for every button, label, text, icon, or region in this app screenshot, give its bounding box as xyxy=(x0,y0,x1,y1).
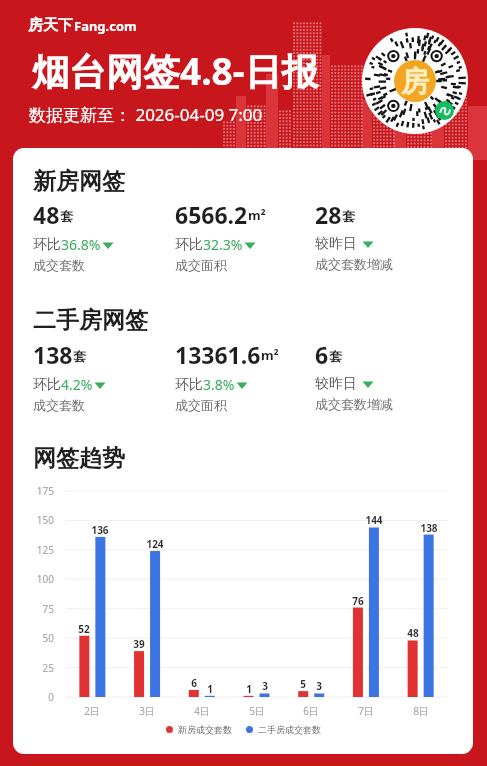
staticText: 二手房成交套数 xyxy=(258,724,321,735)
staticText: 3.8% xyxy=(203,375,235,394)
button[interactable]: 二手房成交套数 xyxy=(246,724,321,735)
staticText: 环比 xyxy=(175,236,203,254)
staticText: 150 xyxy=(13,513,54,527)
staticText: 124 xyxy=(135,537,175,551)
staticText: 136 xyxy=(80,523,120,537)
staticText: 成交面积 xyxy=(175,257,227,273)
staticText: 较昨日 xyxy=(315,235,357,253)
staticText: 28 xyxy=(315,199,342,230)
staticText: 144 xyxy=(354,513,394,527)
staticText: 25 xyxy=(13,661,54,675)
staticText: 6566.2 xyxy=(175,199,248,230)
staticText: m² xyxy=(261,346,279,364)
staticText: 3日 xyxy=(127,704,167,718)
staticText: 100 xyxy=(13,572,54,586)
staticText: m² xyxy=(248,206,266,224)
staticText: 环比 xyxy=(175,376,203,394)
staticText: 4.2% xyxy=(61,375,93,394)
staticText: 6日 xyxy=(291,704,331,718)
staticText: 套 xyxy=(60,208,73,224)
staticText: 0 xyxy=(13,690,54,704)
staticText: 二手房网签 xyxy=(33,306,148,335)
button[interactable]: 扫描二维码 xyxy=(362,28,468,134)
staticText: 8日 xyxy=(401,704,441,718)
staticText: 套 xyxy=(329,348,342,364)
staticText: 成交面积 xyxy=(175,397,227,413)
staticText: 5 xyxy=(283,677,323,691)
staticText: 成交套数 xyxy=(33,397,85,413)
staticText: 环比 xyxy=(33,376,61,394)
staticText: 3 xyxy=(299,679,339,693)
staticText: 网签趋势 xyxy=(33,444,125,473)
staticText: 48 xyxy=(33,199,60,230)
staticText: 较昨日 xyxy=(315,375,357,393)
button[interactable]: 新房成交套数 xyxy=(166,724,232,735)
staticText: 房 xyxy=(401,64,429,99)
staticText: 125 xyxy=(13,543,54,557)
staticText: 新房成交套数 xyxy=(178,724,232,735)
staticText: 烟台网签4.8-日报 xyxy=(32,45,319,96)
staticText: 2日 xyxy=(72,704,112,718)
staticText: 13361.6 xyxy=(175,339,261,370)
staticText: 4日 xyxy=(182,704,222,718)
staticText: 房天下 xyxy=(28,16,73,35)
staticText: 52 xyxy=(64,622,104,636)
staticText: 50 xyxy=(13,631,54,645)
staticText: 175 xyxy=(13,484,54,498)
staticText: 5日 xyxy=(237,704,277,718)
staticText: Fang.com xyxy=(74,17,137,35)
staticText: 7日 xyxy=(346,704,386,718)
staticText: 1 xyxy=(190,682,230,696)
staticText: 数据更新至： 2026-04-09 7:00 xyxy=(29,103,263,126)
staticText: 36.8% xyxy=(61,235,101,254)
staticText: 1 xyxy=(229,682,269,696)
staticText: 新房网签 xyxy=(33,167,125,196)
staticText: 75 xyxy=(13,602,54,616)
staticText: 32.3% xyxy=(203,235,243,254)
staticText: 环比 xyxy=(33,236,61,254)
staticText: 套 xyxy=(342,208,355,224)
staticText: 48 xyxy=(393,626,433,640)
button[interactable]: 房天下 xyxy=(28,16,137,35)
staticText: 6 xyxy=(174,676,214,690)
staticText: 成交套数增减 xyxy=(315,256,393,272)
staticText: 76 xyxy=(338,594,378,608)
staticText: 3 xyxy=(245,679,285,693)
staticText: 39 xyxy=(119,637,159,651)
staticText: 成交套数 xyxy=(33,257,85,273)
staticText: 套 xyxy=(73,348,86,364)
staticText: 6 xyxy=(315,339,329,370)
staticText: 138 xyxy=(409,521,449,535)
staticText: 138 xyxy=(33,339,73,370)
staticText: 成交套数增减 xyxy=(315,396,393,412)
